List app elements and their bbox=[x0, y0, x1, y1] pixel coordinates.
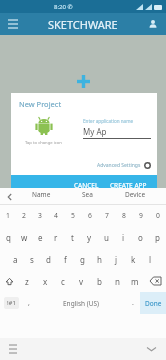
button[interactable]: w bbox=[16, 226, 32, 248]
staticText: 4 bbox=[54, 211, 58, 220]
button[interactable]: CREATE APP bbox=[106, 178, 151, 193]
staticText: w bbox=[21, 232, 28, 243]
staticText: , bbox=[28, 298, 30, 308]
button[interactable]: Delete bbox=[144, 270, 166, 292]
button[interactable]: CANCEL bbox=[70, 178, 103, 193]
staticText: u bbox=[104, 232, 109, 243]
button[interactable]: n bbox=[108, 270, 126, 292]
button[interactable]: 1 bbox=[0, 205, 16, 226]
staticText: 3 bbox=[38, 211, 42, 220]
staticText: 9 bbox=[139, 211, 143, 220]
button[interactable]: 7 bbox=[98, 205, 115, 226]
staticText: 2 bbox=[22, 211, 26, 220]
button[interactable]: 5 bbox=[64, 205, 81, 226]
button[interactable]: p bbox=[149, 226, 166, 248]
staticText: d bbox=[46, 254, 51, 265]
staticText: m bbox=[131, 276, 139, 287]
button[interactable]: 9 bbox=[132, 205, 149, 226]
staticText: r bbox=[54, 232, 58, 243]
staticText: Device bbox=[125, 190, 146, 199]
staticText: SKETCHWARE bbox=[48, 17, 118, 32]
button[interactable]: Hide keyboard bbox=[144, 342, 158, 356]
button[interactable]: Enter application name bbox=[83, 118, 151, 139]
button[interactable]: Account bbox=[145, 16, 161, 32]
staticText: g bbox=[80, 254, 85, 265]
button[interactable]: g bbox=[74, 248, 91, 270]
staticText: c bbox=[61, 276, 65, 287]
button[interactable]: k bbox=[125, 248, 142, 270]
button[interactable]: m bbox=[126, 270, 144, 292]
staticText: Done bbox=[145, 299, 162, 308]
staticText: o bbox=[138, 232, 143, 243]
staticText: !#1 bbox=[7, 299, 16, 307]
button[interactable]: z bbox=[18, 270, 36, 292]
staticText: English (US) bbox=[63, 299, 100, 308]
button[interactable]: y bbox=[81, 226, 98, 248]
staticText: 7 bbox=[105, 211, 109, 220]
button[interactable]: o bbox=[132, 226, 149, 248]
staticText: h bbox=[97, 254, 102, 265]
button[interactable]: Shift bbox=[0, 270, 18, 292]
staticText: j bbox=[115, 254, 118, 265]
staticText: 6 bbox=[88, 211, 92, 220]
staticText: x bbox=[43, 276, 48, 287]
button[interactable]: Device bbox=[121, 188, 150, 201]
button[interactable]: u bbox=[98, 226, 115, 248]
staticText: 0 bbox=[156, 211, 160, 220]
staticText: s bbox=[30, 254, 34, 265]
staticText: 8:20 ✆ bbox=[54, 3, 73, 11]
staticText: y bbox=[87, 232, 92, 243]
button[interactable]: , bbox=[22, 292, 36, 314]
button[interactable]: Open navigation menu bbox=[5, 16, 21, 32]
staticText: My Ap bbox=[83, 126, 107, 137]
staticText: Enter application name bbox=[83, 118, 134, 124]
staticText: k bbox=[131, 254, 136, 265]
staticText: l bbox=[149, 254, 152, 265]
button[interactable]: j bbox=[108, 248, 125, 270]
button[interactable]: Recents bbox=[6, 342, 20, 356]
button[interactable]: !#1 bbox=[0, 292, 22, 314]
button[interactable]: Previous suggestions bbox=[4, 191, 16, 203]
button[interactable]: English (US) bbox=[36, 292, 126, 314]
button[interactable]: Advanced Settings bbox=[97, 162, 151, 169]
button[interactable]: s bbox=[23, 248, 40, 270]
button[interactable]: x bbox=[36, 270, 54, 292]
button[interactable]: e bbox=[32, 226, 48, 248]
button[interactable]: r bbox=[48, 226, 64, 248]
button[interactable]: c bbox=[54, 270, 72, 292]
staticText: Sea bbox=[82, 190, 93, 199]
button[interactable]: a bbox=[7, 248, 23, 270]
staticText: i bbox=[122, 232, 125, 243]
staticText: 8 bbox=[122, 211, 126, 220]
button[interactable]: Name bbox=[28, 188, 55, 201]
button[interactable]: q bbox=[0, 226, 16, 248]
button[interactable]: 6 bbox=[81, 205, 98, 226]
button[interactable]: h bbox=[91, 248, 108, 270]
button[interactable]: 3 bbox=[32, 205, 48, 226]
button[interactable]: d bbox=[40, 248, 57, 270]
staticText: t bbox=[71, 232, 74, 243]
button[interactable]: 0 bbox=[149, 205, 166, 226]
staticText: 1 bbox=[6, 211, 10, 220]
button[interactable]: 8 bbox=[115, 205, 132, 226]
button[interactable]: f bbox=[57, 248, 74, 270]
button[interactable]: v bbox=[72, 270, 90, 292]
button[interactable]: 4 bbox=[48, 205, 64, 226]
button[interactable]: l bbox=[142, 248, 159, 270]
staticText: 5 bbox=[71, 211, 75, 220]
button[interactable]: i bbox=[115, 226, 132, 248]
staticText: Tap to change icon bbox=[25, 140, 62, 146]
button[interactable]: t bbox=[64, 226, 81, 248]
button[interactable]: 2 bbox=[16, 205, 32, 226]
button[interactable]: b bbox=[90, 270, 108, 292]
button[interactable]: Sea bbox=[78, 188, 97, 201]
button[interactable]: New project bbox=[77, 75, 90, 88]
staticText: p bbox=[155, 232, 160, 243]
staticText: Name bbox=[32, 190, 51, 199]
button[interactable]: . bbox=[126, 292, 140, 314]
button[interactable]: Tap to change icon bbox=[34, 117, 54, 137]
button[interactable]: Done bbox=[140, 292, 166, 314]
staticText: v bbox=[79, 276, 84, 287]
staticText: New Project bbox=[19, 99, 62, 109]
staticText: n bbox=[115, 276, 120, 287]
